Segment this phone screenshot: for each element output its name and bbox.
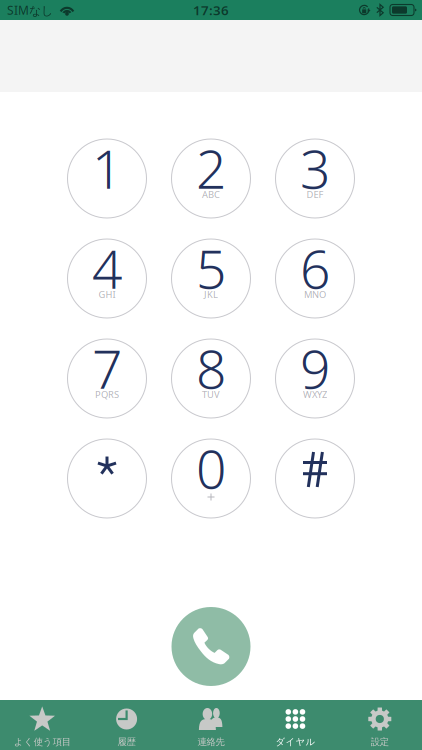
staticText: TUV [202,388,220,401]
button[interactable]: 5 [171,239,250,318]
staticText: 9 [300,333,330,403]
staticText: 1 [92,133,122,203]
button[interactable]: 3 [275,139,354,218]
staticText: 5 [196,233,226,303]
staticText: MNO [304,288,326,301]
button[interactable]: 6 [275,239,354,318]
staticText: 8 [196,333,226,403]
staticText: 連絡先 [197,736,224,748]
staticText: 設定 [371,736,389,748]
staticText: 7 [92,333,122,403]
button[interactable]: 7 [67,339,146,418]
staticText: 4 [92,233,122,303]
staticText: ダイヤル [275,736,315,748]
button[interactable]: 設定 [338,700,422,750]
button[interactable]: 2 [171,139,250,218]
button[interactable]: 8 [171,339,250,418]
button[interactable]: 発信 [171,607,250,686]
staticText: SIMなし [7,2,53,18]
staticText: 17:36 [193,1,229,19]
button[interactable] [67,439,146,518]
staticText: ABC [202,188,220,201]
button[interactable]: 1 [67,139,146,218]
button[interactable]: 履歴 [84,700,169,750]
staticText: 6 [300,233,330,303]
button[interactable]: 4 [67,239,146,318]
staticText: PQRS [95,388,119,401]
staticText: GHI [98,288,115,301]
staticText: よく使う項目 [14,736,71,748]
button[interactable]: よく使う項目 [0,700,84,750]
staticText: 3 [300,133,330,203]
button[interactable]: ダイヤル [253,700,338,750]
staticText: DEF [306,188,323,201]
staticText: 2 [196,133,226,203]
button[interactable]: 連絡先 [169,700,253,750]
button[interactable]: 9 [275,339,354,418]
staticText: WXYZ [303,388,327,401]
staticText: JKL [204,288,218,301]
button[interactable] [275,439,354,518]
button[interactable]: 0 [171,439,250,518]
staticText: 0 [196,433,226,503]
staticText: 履歴 [118,736,136,748]
